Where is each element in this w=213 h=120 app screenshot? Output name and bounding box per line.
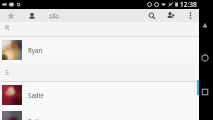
button[interactable]: Contacts [23,9,41,22]
button[interactable]: Home [199,52,211,64]
staticText: Sadie [28,91,44,99]
staticText: Seth [28,117,41,120]
staticText: Ryan [28,46,43,54]
button[interactable]: Add contact [161,9,179,22]
button[interactable]: Seth [0,108,199,120]
button[interactable]: Favorites [2,9,20,22]
button[interactable]: Groups [45,9,63,22]
staticText: S [5,68,9,78]
button[interactable]: Search [143,9,161,22]
button[interactable]: Sadie [0,82,199,108]
button[interactable]: Back [199,20,211,32]
staticText: R [5,23,10,33]
staticText: 12:38 [180,0,197,9]
button[interactable]: More options [181,9,199,22]
button[interactable]: Ryan [0,37,199,63]
button[interactable]: Recent apps [199,86,211,98]
